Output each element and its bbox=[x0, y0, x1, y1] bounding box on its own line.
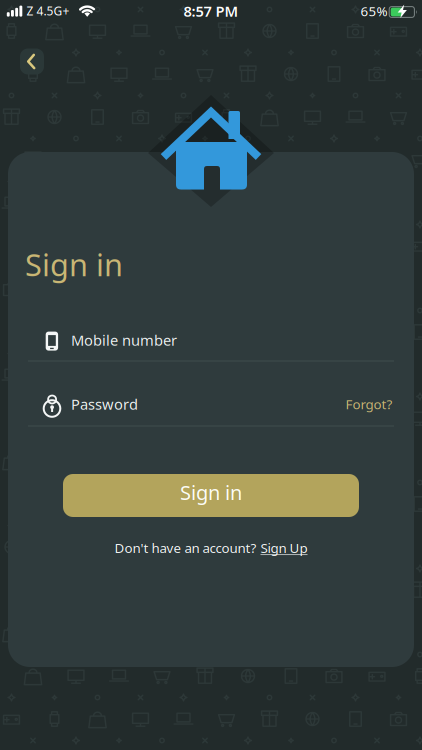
staticText: Sign in bbox=[180, 479, 242, 506]
staticText: 65% bbox=[360, 2, 387, 20]
staticText: Sign Up bbox=[260, 539, 307, 557]
staticText: Sign in bbox=[25, 244, 123, 285]
button[interactable]: Sign in bbox=[63, 474, 359, 517]
staticText: Forgot? bbox=[345, 395, 392, 413]
staticText: Password bbox=[71, 394, 138, 414]
staticText: Mobile number bbox=[71, 330, 177, 350]
button[interactable]: Back bbox=[20, 48, 44, 74]
staticText: Don't have an account? bbox=[114, 539, 256, 557]
staticText: 8:57 PM bbox=[183, 1, 238, 21]
staticText: Z 4.5G+ bbox=[26, 3, 69, 19]
button[interactable]: Forgot? bbox=[345, 395, 392, 413]
button[interactable]: Sign Up bbox=[260, 539, 307, 557]
